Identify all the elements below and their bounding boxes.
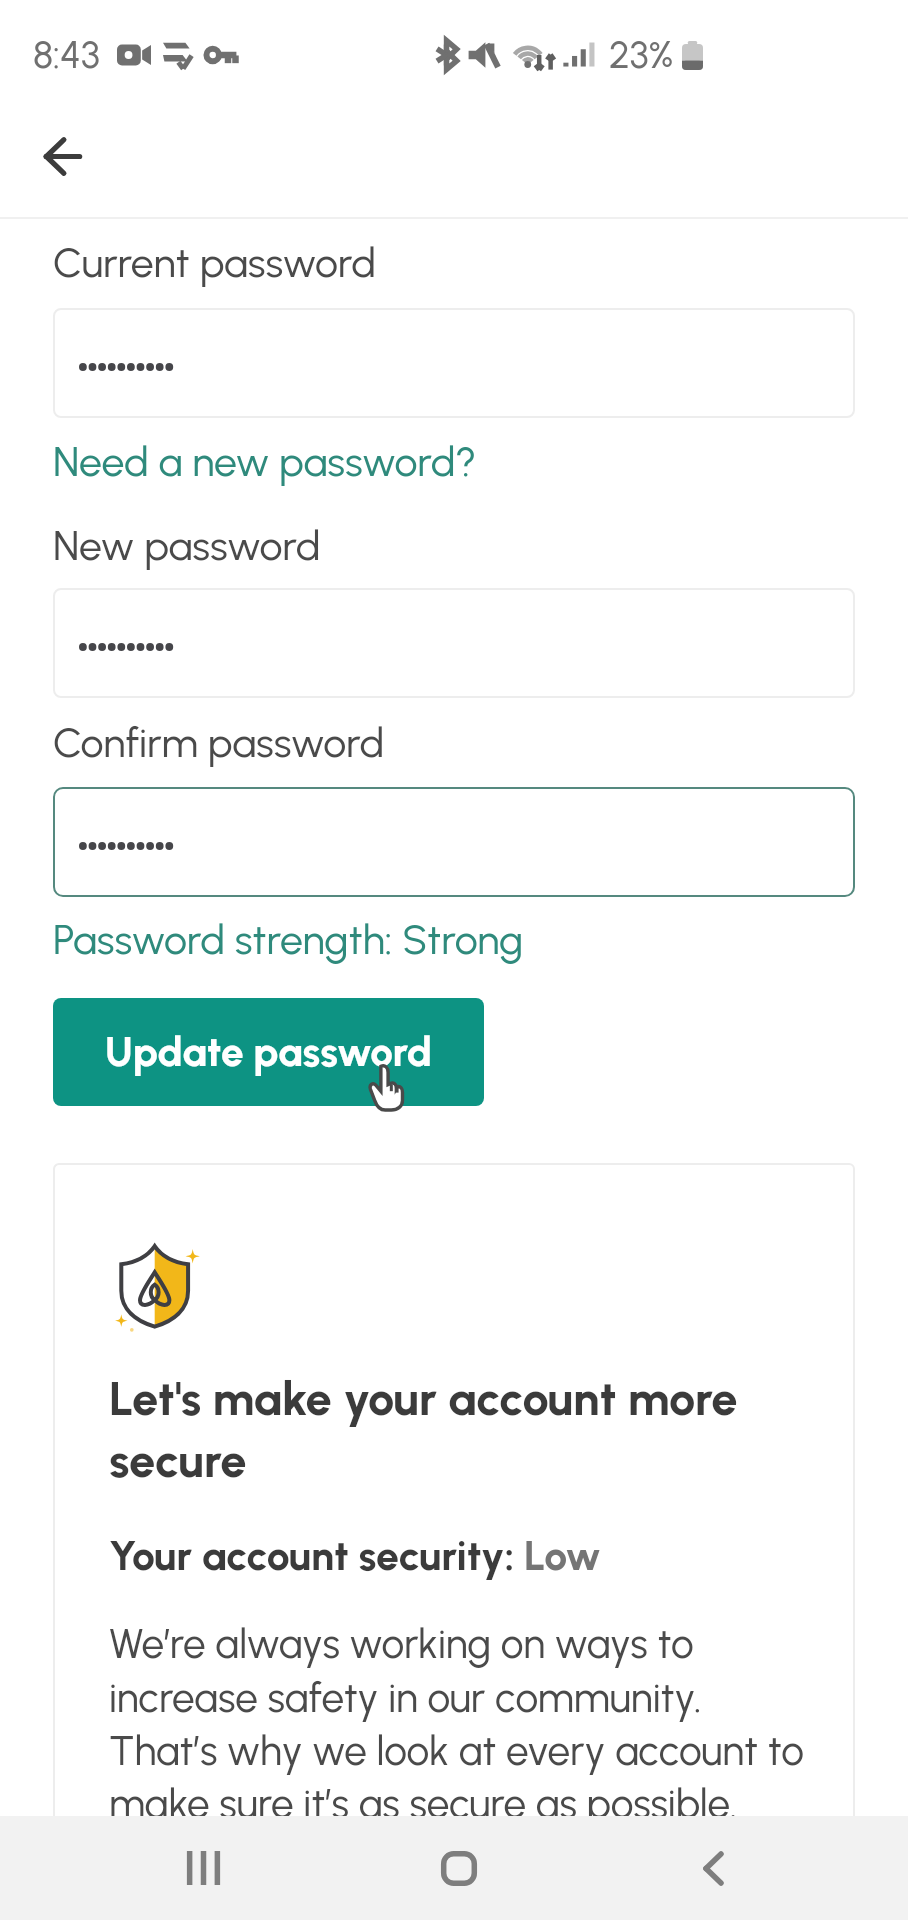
- button[interactable]: Back: [653, 1816, 773, 1920]
- button[interactable]: Home: [399, 1816, 519, 1920]
- staticText: 8:43: [33, 32, 100, 78]
- staticText: Current password: [53, 238, 376, 287]
- staticText: Your account security: Low: [109, 1531, 601, 1580]
- staticText: We’re always working on ways to increase…: [109, 1620, 809, 1828]
- button[interactable]: Need a new password?: [53, 437, 477, 486]
- staticText: Need a new password?: [53, 437, 477, 486]
- button[interactable]: [53, 588, 855, 698]
- staticText: Update password: [105, 1028, 432, 1077]
- button[interactable]: [53, 787, 855, 897]
- button[interactable]: Back: [18, 112, 106, 200]
- button[interactable]: Update password: [53, 998, 484, 1106]
- staticText: Let's make your account more secure: [109, 1370, 809, 1489]
- button[interactable]: Recent apps: [143, 1816, 263, 1920]
- button[interactable]: [53, 308, 855, 418]
- staticText: Password strength: Strong: [53, 915, 524, 964]
- staticText: 23%: [609, 32, 674, 78]
- staticText: New password: [53, 521, 321, 570]
- staticText: Confirm password: [53, 718, 385, 767]
